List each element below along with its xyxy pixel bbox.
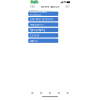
button[interactable]: Layout: [28, 39, 58, 43]
button[interactable]: Colors: [28, 33, 58, 37]
button[interactable]: Lists and sections: [28, 17, 58, 21]
button[interactable]: Tab: [63, 90, 72, 96]
button[interactable]: Tab: [37, 90, 46, 96]
staticText: Typography: [30, 28, 45, 32]
staticText: Navigation: [30, 23, 44, 26]
button[interactable]: Back: [30, 5, 35, 8]
staticText: Back: [30, 5, 35, 8]
button[interactable]: Tab: [46, 90, 54, 96]
button[interactable]: Typography: [28, 28, 58, 32]
staticText: 9:41: [31, 0, 38, 4]
staticText: Layout: [30, 39, 38, 42]
staticText: Buttons and controls: [30, 10, 47, 17]
staticText: tap a row to open: [40, 9, 51, 11]
button[interactable]: Navigation: [28, 22, 58, 27]
button[interactable]: Tab: [54, 90, 63, 96]
staticText: Components: [29, 9, 39, 11]
button[interactable]: Buttons and controls: [28, 12, 58, 16]
button[interactable]: Tab: [28, 90, 37, 96]
staticText: Edit: [65, 5, 70, 8]
staticText: Colors: [30, 34, 39, 37]
button[interactable]: Edit: [65, 5, 70, 8]
staticText: Lists and sections: [30, 17, 53, 21]
staticText: Demo Screen: [40, 5, 59, 8]
